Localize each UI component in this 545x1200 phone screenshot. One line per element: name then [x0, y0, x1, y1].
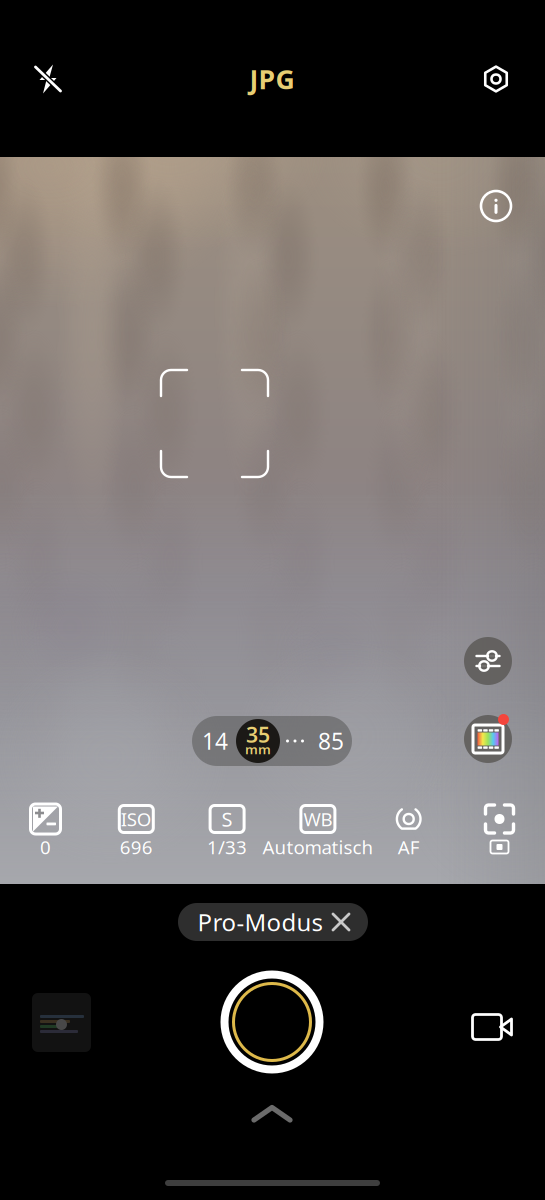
staticText: 35: [246, 720, 270, 749]
button[interactable]: Info: [474, 184, 518, 228]
button[interactable]: AF: [363, 799, 454, 861]
staticText: WB: [303, 807, 332, 831]
staticText: AF: [398, 835, 420, 859]
button[interactable]: Show more controls: [232, 1094, 312, 1134]
staticText: mm: [245, 740, 271, 758]
button[interactable]: 85: [310, 716, 352, 766]
button[interactable]: 35: [236, 716, 280, 766]
staticText: Pro-Modus: [197, 906, 322, 938]
button[interactable]: 0: [0, 799, 91, 861]
button[interactable]: S: [182, 799, 272, 861]
button[interactable]: Pro-Modus: [178, 903, 368, 941]
button[interactable]: Switch to video: [465, 1010, 509, 1044]
button[interactable]: Filters: [464, 715, 512, 763]
button[interactable]: Metering mode: [454, 799, 545, 861]
staticText: 85: [318, 726, 344, 756]
staticText: 14: [202, 726, 228, 756]
staticText: 0: [40, 835, 51, 859]
button[interactable]: Settings: [469, 49, 523, 109]
button[interactable]: 14: [194, 716, 236, 766]
staticText: 696: [120, 835, 153, 859]
button[interactable]: Flash off: [21, 49, 75, 109]
button[interactable]: WB: [272, 799, 363, 861]
button[interactable]: Adjustments: [464, 637, 512, 685]
staticText: Automatisch: [262, 835, 373, 859]
staticText: S: [222, 806, 233, 832]
staticText: 1/33: [207, 835, 247, 859]
button[interactable]: [280, 716, 310, 766]
button[interactable]: Photo library: [32, 993, 91, 1052]
staticText: ISO: [121, 807, 152, 831]
button[interactable]: JPG: [227, 58, 317, 100]
button[interactable]: Take photo: [219, 969, 325, 1075]
staticText: JPG: [249, 61, 294, 97]
button[interactable]: ISO: [91, 799, 182, 861]
